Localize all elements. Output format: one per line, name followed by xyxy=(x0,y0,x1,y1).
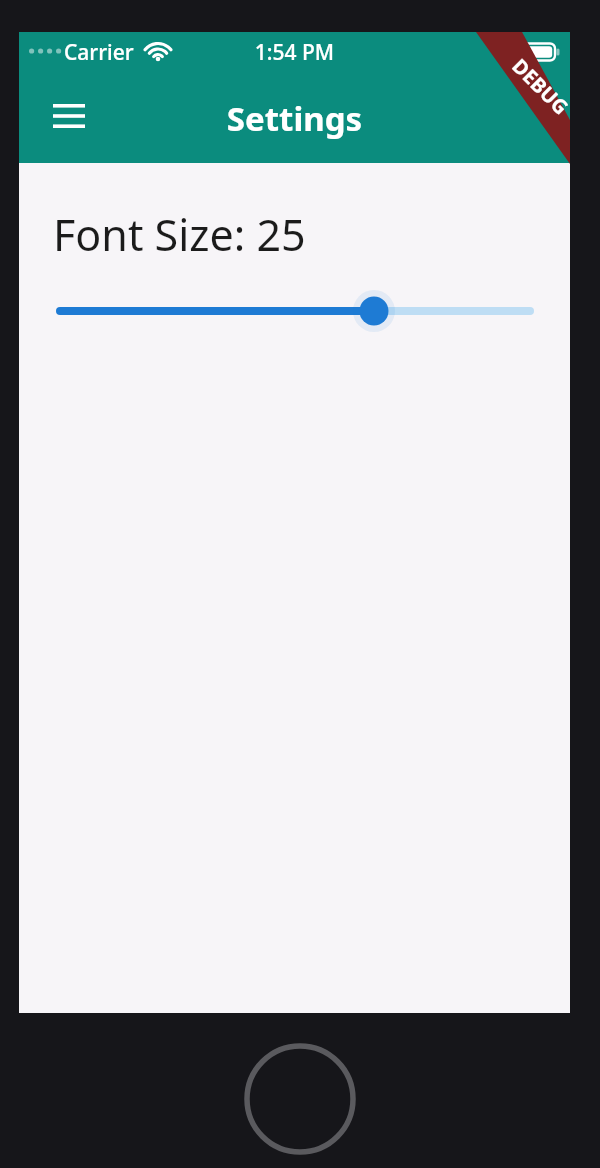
staticText: Font Size: 25 xyxy=(53,205,306,264)
staticText: 1:54 PM xyxy=(19,38,570,67)
staticText: Carrier xyxy=(64,38,134,67)
button[interactable]: Open navigation menu xyxy=(38,90,100,142)
staticText: DEBUG xyxy=(507,53,574,120)
button[interactable]: Font size slider xyxy=(19,287,570,335)
staticText: Settings xyxy=(19,96,570,141)
